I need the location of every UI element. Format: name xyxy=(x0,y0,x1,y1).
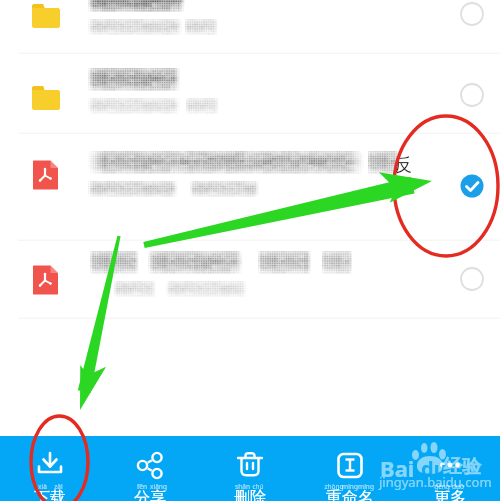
button[interactable]: Share xyxy=(100,436,200,501)
staticText: 多 xyxy=(450,488,466,501)
staticText: 反 xyxy=(394,154,412,177)
staticText: 下 xyxy=(34,488,50,501)
button[interactable] xyxy=(0,0,500,54)
staticText: zhòng xyxy=(324,482,344,491)
staticText: gèng xyxy=(434,482,450,491)
staticText: 除 xyxy=(250,488,266,501)
staticText: shān xyxy=(235,482,250,491)
staticText: chú xyxy=(252,482,264,491)
staticText: 经验 xyxy=(443,455,481,479)
button[interactable] xyxy=(0,54,500,134)
button[interactable]: Delete xyxy=(200,436,300,501)
staticText: jingyan.baidu.com xyxy=(379,473,492,491)
staticText: 重 xyxy=(326,488,342,501)
staticText: fēn xyxy=(137,482,147,491)
staticText: 享 xyxy=(150,488,166,501)
button[interactable]: Download xyxy=(0,436,100,501)
staticText: 载 xyxy=(50,488,66,501)
staticText: 分 xyxy=(134,488,150,501)
button[interactable]: Rename xyxy=(300,436,400,501)
staticText: duō xyxy=(452,482,464,491)
staticText: zǎi xyxy=(54,482,63,491)
button[interactable] xyxy=(0,134,500,241)
staticText: mìng xyxy=(342,482,358,491)
staticText: xiǎng xyxy=(150,482,167,491)
staticText: 名 xyxy=(358,488,374,501)
staticText: míng xyxy=(358,482,374,491)
staticText: 删 xyxy=(234,488,250,501)
staticText: 命 xyxy=(342,488,358,501)
staticText: du xyxy=(421,455,447,482)
button[interactable]: More xyxy=(400,436,500,501)
staticText: Bai xyxy=(380,453,415,483)
button[interactable] xyxy=(0,241,500,319)
staticText: xià xyxy=(38,482,47,491)
staticText: 更 xyxy=(434,488,450,501)
